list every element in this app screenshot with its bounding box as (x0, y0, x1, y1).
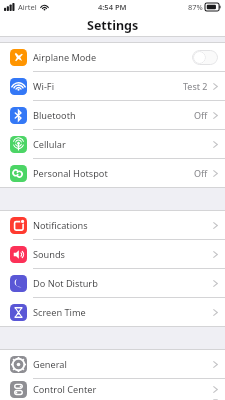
button[interactable]: Airplane Mode (0, 43, 225, 72)
button[interactable]: Bluetooth (0, 101, 225, 130)
button[interactable]: Wi-Fi (0, 72, 225, 101)
staticText: 87% (188, 2, 203, 12)
staticText: Off (194, 167, 208, 179)
staticText: Screen Time (33, 306, 86, 319)
button[interactable]: Do Not Disturb (0, 269, 225, 298)
button[interactable]: Sounds (0, 240, 225, 269)
staticText: Test 2 (183, 80, 208, 92)
staticText: Bluetooth (33, 109, 76, 122)
staticText: Cellular (33, 138, 66, 151)
button[interactable]: Notifications (0, 211, 225, 240)
button[interactable]: Control Center (0, 379, 225, 400)
staticText: Off (194, 109, 208, 121)
button[interactable]: General (0, 350, 225, 379)
staticText: Sounds (33, 248, 66, 261)
staticText: Personal Hotspot (33, 167, 108, 180)
staticText: Airtel (18, 2, 37, 12)
button[interactable]: Airplane Mode toggle, off (192, 50, 218, 65)
button[interactable]: Personal Hotspot (0, 159, 225, 187)
staticText: Airplane Mode (33, 51, 97, 64)
button[interactable]: Screen Time (0, 298, 225, 326)
staticText: Notifications (33, 219, 88, 232)
staticText: Settings (87, 17, 139, 34)
staticText: 4:54 PM (98, 2, 127, 12)
button[interactable]: Cellular (0, 130, 225, 159)
staticText: General (33, 358, 67, 371)
staticText: Do Not Disturb (33, 277, 98, 290)
staticText: Wi-Fi (33, 80, 55, 93)
staticText: Control Center (33, 383, 97, 396)
